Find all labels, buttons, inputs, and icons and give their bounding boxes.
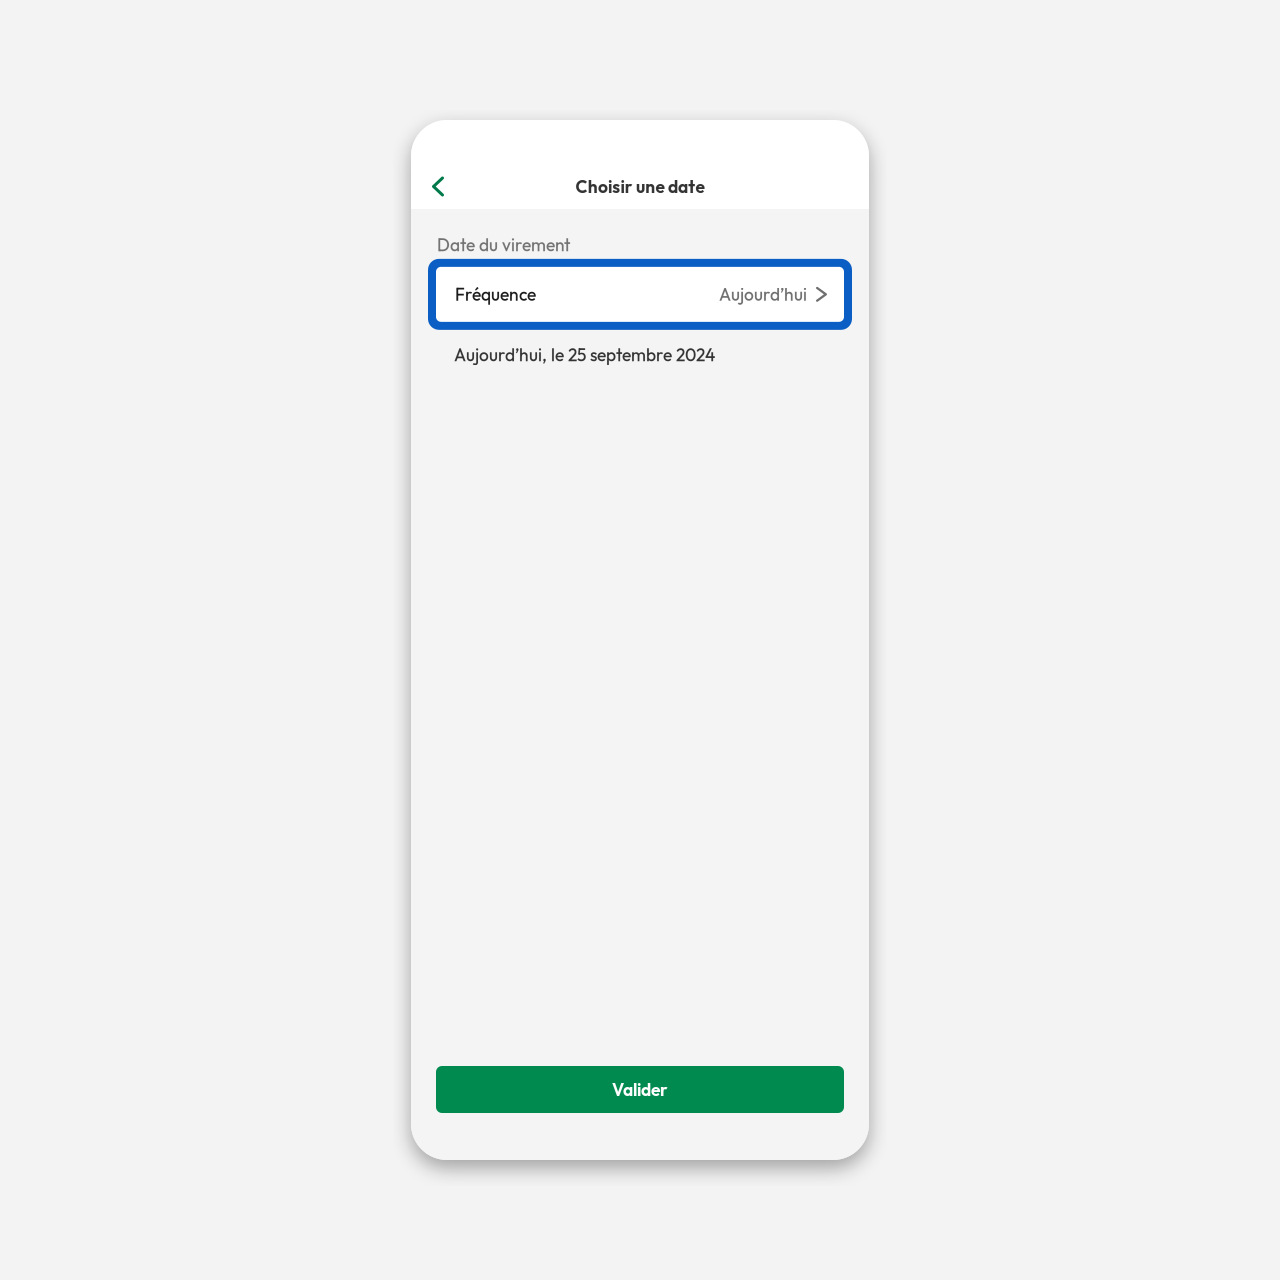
staticText: Choisir une date bbox=[575, 176, 704, 197]
button[interactable]: Retour bbox=[411, 120, 460, 208]
staticText: Fréquence bbox=[455, 283, 536, 305]
staticText: Aujourd’hui bbox=[719, 283, 807, 305]
button[interactable]: Fréquence bbox=[428, 259, 852, 330]
staticText: Aujourd’hui, le 25 septembre 2024 bbox=[454, 344, 715, 366]
staticText: Date du virement bbox=[437, 234, 570, 256]
staticText: Valider bbox=[612, 1079, 668, 1100]
button[interactable]: Valider bbox=[436, 1066, 844, 1113]
